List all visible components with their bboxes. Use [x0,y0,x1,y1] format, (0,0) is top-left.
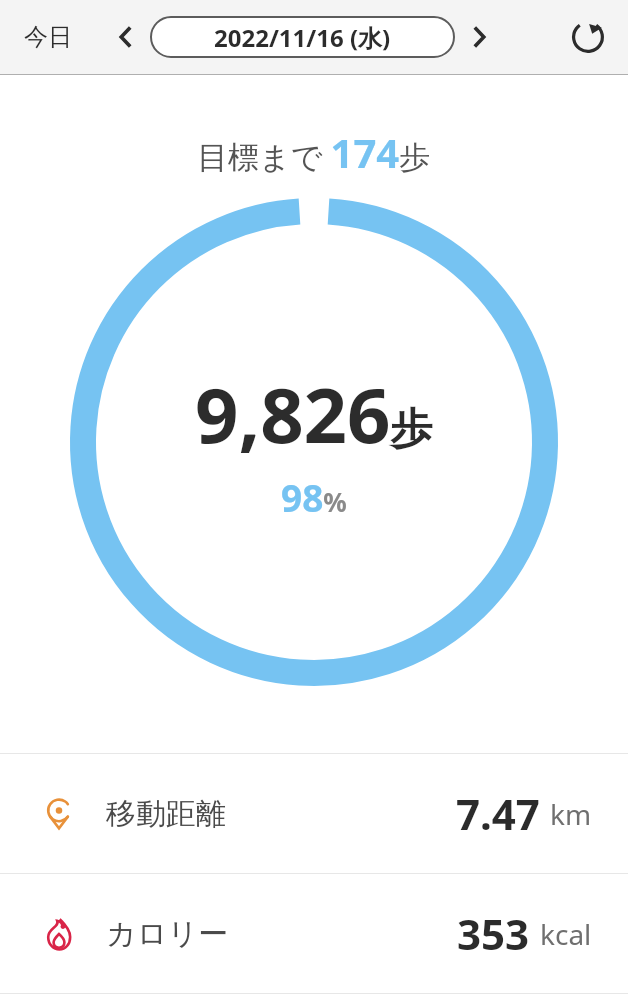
staticText: 移動距離 [106,795,226,833]
button[interactable]: 次の日 [457,15,501,59]
staticText: 98% [281,472,347,522]
staticText: カロリー [106,915,229,953]
button[interactable]: 2022/11/16 (水) [150,16,455,58]
staticText: 2022/11/16 (水) [214,21,391,54]
button[interactable]: 前の日 [104,15,148,59]
staticText: 今日 [24,22,72,52]
button[interactable]: 移動距離 [0,754,628,873]
staticText: 9,826歩 [195,362,433,466]
staticText: 7.47 [456,785,540,842]
staticText: km [550,795,592,833]
staticText: kcal [540,915,592,953]
staticText: 目標まで 174歩 [197,125,431,179]
button[interactable]: 今日 [14,12,82,62]
staticText: 353 [457,905,530,962]
button[interactable]: 更新 [562,11,614,63]
button[interactable]: カロリー [0,874,628,993]
